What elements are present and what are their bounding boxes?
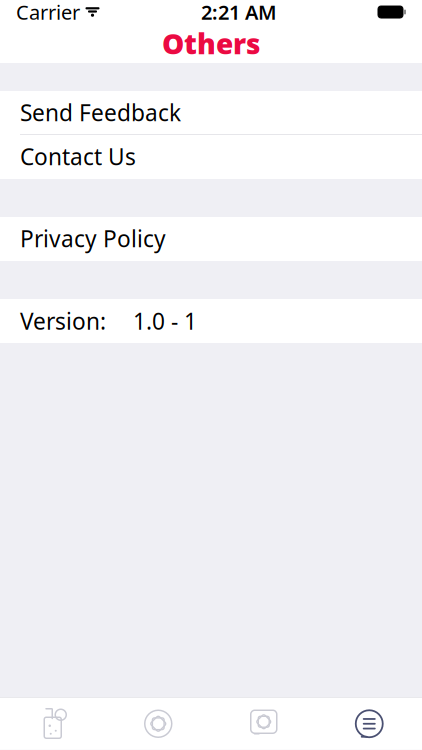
button[interactable]: Favorites xyxy=(105,698,211,750)
staticText: Privacy Policy xyxy=(20,223,166,253)
button[interactable]: Drinks xyxy=(0,698,105,750)
staticText: Others xyxy=(162,25,260,62)
button[interactable]: Reviews xyxy=(211,698,316,750)
button[interactable]: Send Feedback xyxy=(0,91,422,135)
staticText: Carrier xyxy=(16,0,80,25)
button[interactable]: Contact Us xyxy=(0,135,422,179)
staticText: Version: xyxy=(20,306,106,336)
button[interactable]: Others xyxy=(316,698,422,750)
staticText: Send Feedback xyxy=(20,97,181,127)
staticText: Contact Us xyxy=(20,141,136,171)
button[interactable]: Privacy Policy xyxy=(0,217,422,261)
staticText: 1.0 - 1 xyxy=(133,306,197,336)
staticText: 2:21 AM xyxy=(201,0,277,25)
